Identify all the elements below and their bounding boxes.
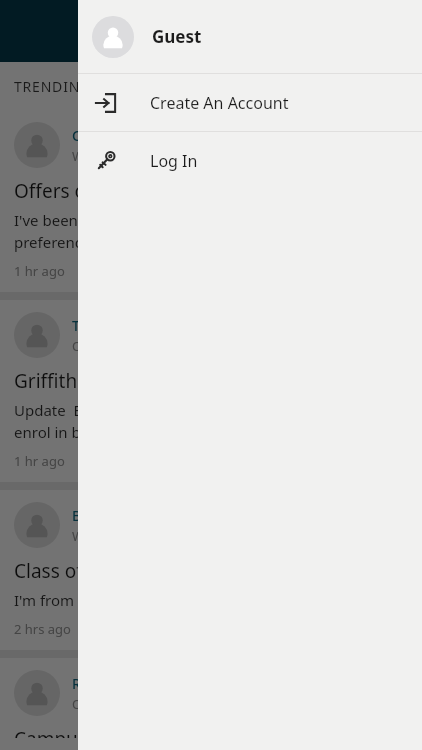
staticText: Chloe bbox=[72, 126, 111, 145]
staticText: 1 hr ago bbox=[14, 262, 65, 280]
staticText: 2 hrs ago bbox=[14, 620, 71, 638]
button[interactable]: Chloe bbox=[0, 110, 422, 292]
staticText: I've been accepted into my first bbox=[14, 210, 235, 230]
button[interactable]: Guest bbox=[78, 0, 422, 73]
staticText: I'm from Brisbane, anyone else? bbox=[14, 590, 239, 610]
staticText: Welcome to Griffith bbox=[72, 527, 191, 545]
staticText: Update Everyone should bbox=[14, 400, 191, 420]
staticText: Log In bbox=[150, 150, 198, 172]
staticText: Riley bbox=[72, 674, 104, 693]
staticText: 1 hr ago bbox=[14, 452, 65, 470]
staticText: Campus tours bbox=[14, 726, 139, 738]
button[interactable]: Tom bbox=[0, 300, 422, 482]
staticText: Create An Account bbox=[150, 92, 289, 114]
staticText: Class of 2024 bbox=[14, 558, 132, 584]
staticText: preference, how about you? bbox=[14, 232, 210, 252]
button[interactable]: Ben bbox=[0, 490, 422, 650]
staticText: Ben bbox=[72, 506, 98, 525]
staticText: Guest bbox=[152, 25, 202, 48]
staticText: Griffith Open Day bbox=[14, 368, 171, 394]
button[interactable]: Riley bbox=[0, 658, 422, 750]
staticText: Welcome to Griffith bbox=[72, 147, 191, 165]
staticText: Orientation bbox=[72, 695, 143, 713]
staticText: Tom bbox=[72, 316, 101, 335]
staticText: TRENDING bbox=[14, 77, 92, 96]
staticText: Offers out soon bbox=[14, 178, 154, 204]
button[interactable]: Create An Account bbox=[78, 74, 422, 131]
button[interactable]: Log In bbox=[78, 132, 422, 189]
staticText: Orientation bbox=[72, 337, 143, 355]
staticText: enrol in both classes bbox=[14, 422, 158, 442]
